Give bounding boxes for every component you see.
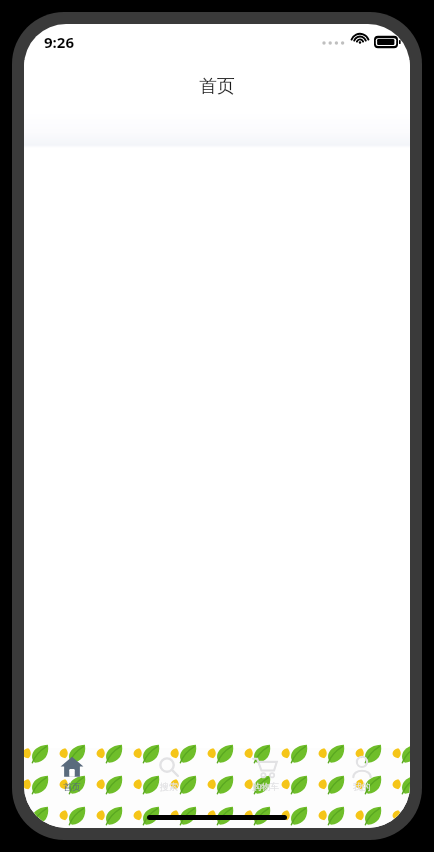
button[interactable]: 搜索 <box>125 748 213 796</box>
staticText: 首页 <box>63 781 81 792</box>
staticText: 9:26 <box>44 32 74 52</box>
staticText: 首页 <box>199 75 235 98</box>
staticText: 我的 <box>353 781 371 792</box>
button[interactable]: 我的 <box>318 748 406 796</box>
button[interactable]: 购物车 <box>221 748 309 796</box>
staticText: 搜索 <box>160 781 178 792</box>
button[interactable]: 首页 <box>28 748 116 796</box>
staticText: 购物车 <box>252 781 279 792</box>
